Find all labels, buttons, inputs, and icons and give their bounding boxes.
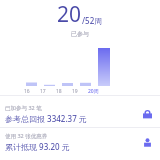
button[interactable]: 已加参与 32 笔	[0, 100, 160, 127]
staticText: 18	[56, 88, 62, 95]
staticText: 20	[57, 0, 82, 29]
staticText: 已加参与 32 笔	[5, 104, 42, 112]
staticText: 19	[72, 88, 78, 95]
other: Total return details	[139, 106, 155, 122]
button[interactable]: 使用 32 张优惠券	[0, 128, 160, 155]
staticText: /52周	[82, 15, 103, 26]
staticText: 参考总回报 3342.37 元	[5, 113, 87, 124]
staticText: 16	[24, 88, 30, 95]
other: Coupon details	[139, 134, 155, 150]
staticText: 17	[40, 88, 46, 95]
staticText: 已参与	[0, 30, 160, 38]
staticText: 20周	[88, 88, 99, 95]
staticText: 累计抵现 93.20 元	[5, 141, 70, 152]
staticText: 使用 32 张优惠券	[5, 132, 48, 140]
